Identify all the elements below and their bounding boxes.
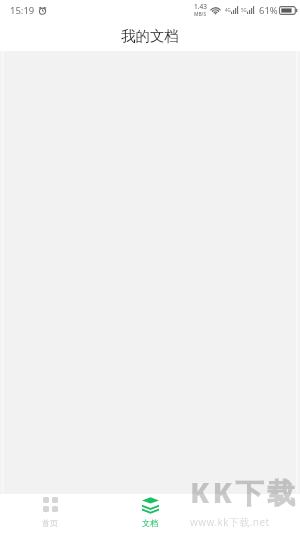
staticText: MB/S [194, 11, 207, 18]
staticText: 5G [241, 7, 247, 13]
staticText: 61% [259, 4, 278, 17]
staticText: www.kk下载.net [190, 515, 270, 529]
staticText: KK下载 [190, 473, 299, 511]
staticText: 我的文档 [121, 27, 179, 45]
button[interactable]: 文档 [100, 494, 200, 533]
staticText: 文档 [142, 518, 158, 528]
button[interactable]: 首页 [0, 494, 100, 533]
staticText: 15:19 [10, 4, 35, 17]
staticText: 首页 [42, 518, 58, 528]
staticText: 4G [225, 7, 231, 13]
staticText: 1.43 [194, 2, 207, 11]
